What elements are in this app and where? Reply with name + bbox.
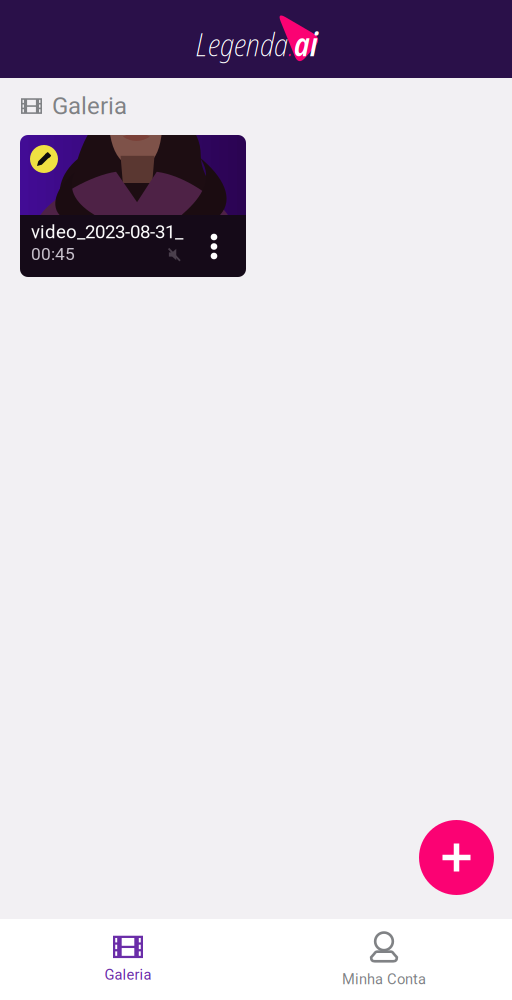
staticText: . bbox=[288, 22, 294, 66]
staticText: Legenda bbox=[196, 22, 288, 66]
staticText: 00:45 bbox=[31, 244, 75, 264]
button[interactable]: Edit video bbox=[30, 145, 58, 173]
button[interactable]: video_2023-08-31_ bbox=[20, 135, 246, 277]
staticText: Galeria bbox=[52, 92, 127, 120]
button[interactable]: Add video bbox=[419, 820, 494, 895]
staticText: Galeria bbox=[104, 966, 151, 983]
staticText: video_2023-08-31_ bbox=[31, 221, 183, 243]
button[interactable]: Galeria bbox=[0, 922, 256, 997]
button[interactable]: Minha Conta bbox=[256, 917, 512, 1000]
staticText: Minha Conta bbox=[342, 971, 426, 988]
staticText: ai bbox=[294, 22, 318, 66]
button[interactable]: More options bbox=[201, 229, 227, 267]
